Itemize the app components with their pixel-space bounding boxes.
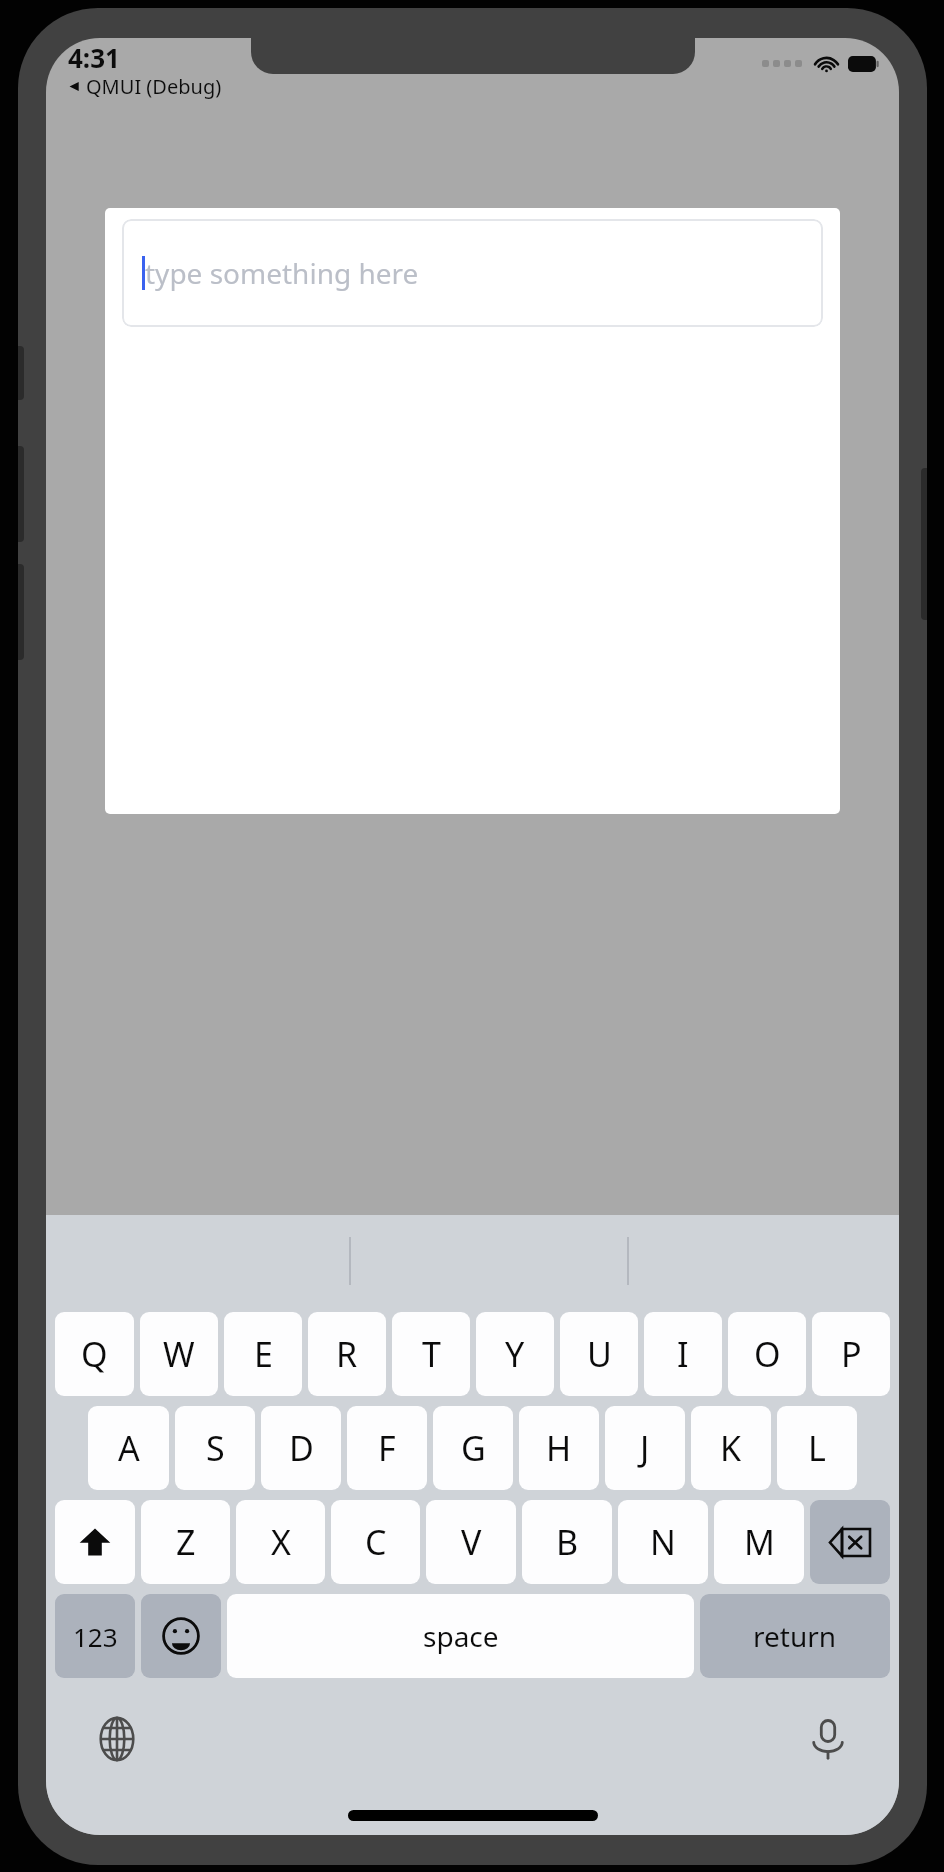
staticText: space <box>423 1617 499 1655</box>
staticText: O <box>754 1331 781 1377</box>
staticText: B <box>556 1519 579 1565</box>
button[interactable]: return <box>700 1594 890 1678</box>
button[interactable]: Z <box>141 1500 230 1584</box>
staticText: R <box>336 1331 358 1377</box>
staticText: Y <box>505 1331 525 1377</box>
button[interactable]: S <box>175 1406 255 1490</box>
button[interactable]: C <box>331 1500 420 1584</box>
button[interactable]: E <box>224 1312 302 1396</box>
staticText: M <box>744 1519 775 1565</box>
button[interactable]: 123 <box>55 1594 135 1678</box>
staticText: V <box>461 1519 482 1565</box>
staticText: Q <box>81 1331 108 1377</box>
button[interactable]: A <box>88 1406 169 1490</box>
staticText: E <box>254 1331 273 1377</box>
button[interactable]: Dictation <box>801 1712 855 1766</box>
button[interactable]: W <box>140 1312 218 1396</box>
staticText: type something here <box>145 254 419 292</box>
staticText: Z <box>176 1519 196 1565</box>
staticText: C <box>365 1519 387 1565</box>
staticText: T <box>422 1331 441 1377</box>
button[interactable]: X <box>236 1500 325 1584</box>
button[interactable]: F <box>347 1406 427 1490</box>
button[interactable]: I <box>644 1312 722 1396</box>
button[interactable]: N <box>618 1500 708 1584</box>
staticText: 123 <box>73 1619 118 1654</box>
staticText: P <box>841 1331 862 1377</box>
button[interactable]: M <box>714 1500 804 1584</box>
staticText: J <box>640 1425 650 1471</box>
button[interactable]: L <box>777 1406 857 1490</box>
staticText: F <box>378 1425 396 1471</box>
staticText: S <box>206 1425 225 1471</box>
staticText: W <box>163 1331 195 1377</box>
button[interactable]: T <box>392 1312 470 1396</box>
staticText: X <box>271 1519 291 1565</box>
staticText: L <box>808 1425 826 1471</box>
button[interactable]: D <box>261 1406 341 1490</box>
staticText: 4:31 <box>68 40 120 75</box>
button[interactable]: U <box>560 1312 638 1396</box>
staticText: QMUI (Debug) <box>86 73 222 100</box>
staticText: A <box>118 1425 140 1471</box>
button[interactable]: R <box>308 1312 386 1396</box>
button[interactable]: J <box>605 1406 685 1490</box>
button[interactable]: Y <box>476 1312 554 1396</box>
staticText: K <box>720 1425 742 1471</box>
button[interactable]: Change keyboard <box>90 1712 144 1766</box>
button[interactable]: Shift <box>55 1500 135 1584</box>
button[interactable]: P <box>812 1312 890 1396</box>
button[interactable]: type something here <box>122 219 823 327</box>
button[interactable]: B <box>522 1500 612 1584</box>
button[interactable]: K <box>691 1406 771 1490</box>
button[interactable]: Backspace <box>810 1500 890 1584</box>
button[interactable]: H <box>519 1406 599 1490</box>
button[interactable]: G <box>433 1406 513 1490</box>
button[interactable]: O <box>728 1312 806 1396</box>
button[interactable]: V <box>426 1500 516 1584</box>
button[interactable]: Q <box>55 1312 134 1396</box>
staticText: D <box>289 1425 314 1471</box>
staticText: G <box>461 1425 486 1471</box>
staticText: H <box>546 1425 572 1471</box>
staticText: I <box>677 1331 689 1377</box>
staticText: return <box>753 1617 837 1655</box>
button[interactable]: space <box>227 1594 694 1678</box>
staticText: N <box>650 1519 676 1565</box>
button[interactable]: Emoji <box>141 1594 221 1678</box>
staticText: U <box>587 1331 612 1377</box>
